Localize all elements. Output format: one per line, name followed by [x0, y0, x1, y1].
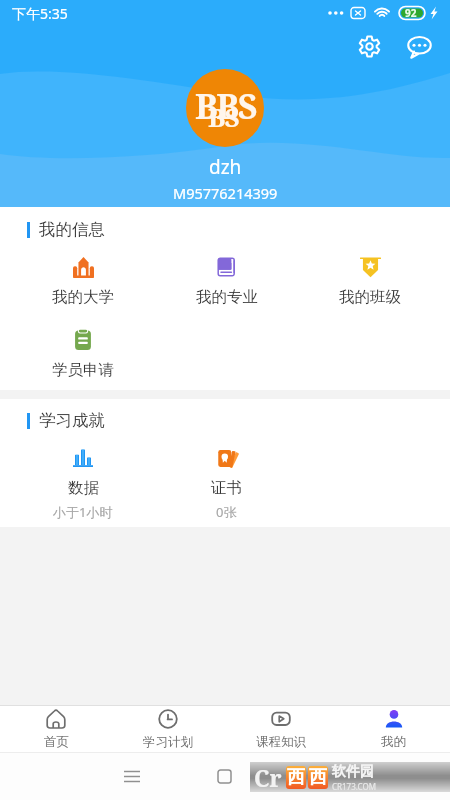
staticText: 我的	[381, 734, 406, 750]
button[interactable]: 我的专业	[155, 245, 298, 307]
staticText: BS	[208, 99, 239, 134]
button[interactable]: 首页	[0, 706, 112, 752]
button[interactable]: 证书	[155, 436, 298, 521]
staticText: 学习计划	[143, 734, 193, 750]
staticText: dzh	[209, 154, 242, 180]
staticText: 西	[309, 766, 327, 789]
button[interactable]: 我的大学	[11, 245, 155, 307]
staticText: 数据	[68, 478, 99, 498]
staticText: 我的信息	[39, 219, 105, 240]
staticText: 软件园	[332, 763, 374, 781]
staticText: 证书	[211, 478, 242, 498]
staticText: 我的专业	[196, 287, 258, 307]
staticText: 课程知识	[256, 734, 306, 750]
staticText: Cr	[254, 762, 282, 792]
staticText: 我的大学	[52, 287, 114, 307]
button[interactable]: 我的	[337, 706, 450, 752]
button[interactable]: 学员申请	[11, 318, 155, 380]
staticText: 下午5:35	[12, 4, 68, 23]
staticText: BBS	[195, 83, 256, 129]
staticText: 我的班级	[339, 287, 401, 307]
staticText: CR173.COM	[332, 781, 376, 792]
button[interactable]: 课程知识	[224, 706, 337, 752]
staticText: M95776214399	[173, 183, 278, 203]
button[interactable]: Avatar	[186, 69, 264, 147]
staticText: 92	[405, 6, 417, 20]
staticText: 首页	[44, 734, 69, 750]
button[interactable]: Messages	[402, 29, 436, 63]
staticText: 学习成就	[39, 410, 105, 431]
button[interactable]: 学习计划	[112, 706, 224, 752]
button[interactable]: Settings	[352, 29, 386, 63]
button[interactable]: 数据	[11, 436, 155, 521]
staticText: 小于1小时	[53, 503, 113, 521]
staticText: 西	[287, 766, 305, 789]
button[interactable]: 我的班级	[298, 245, 441, 307]
staticText: 学员申请	[52, 360, 114, 380]
staticText: 0张	[216, 503, 237, 521]
